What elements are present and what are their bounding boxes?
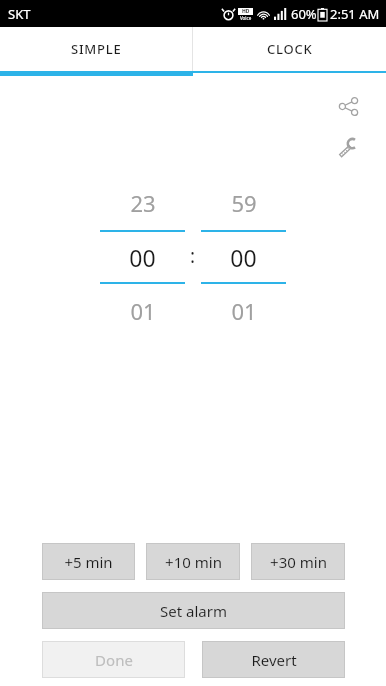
staticText: Revert [251, 650, 297, 670]
staticText: : [190, 243, 196, 269]
staticText: +5 min [64, 552, 113, 572]
button[interactable]: Share [328, 86, 368, 126]
staticText: 23 [130, 188, 156, 218]
staticText: 00 [129, 242, 156, 273]
staticText: Done [95, 650, 133, 670]
staticText: HD [242, 8, 250, 15]
staticText: 01 [130, 296, 156, 326]
button[interactable]: SIMPLE [0, 27, 192, 71]
button[interactable]: 59 [201, 176, 286, 338]
staticText: +10 min [165, 552, 222, 572]
staticText: 2:51 AM [330, 5, 380, 23]
button[interactable]: Done [42, 641, 185, 678]
staticText: +30 min [270, 552, 327, 572]
staticText: CLOCK [267, 40, 313, 58]
button[interactable]: CLOCK [193, 27, 386, 71]
button[interactable]: +5 min [42, 543, 135, 580]
button[interactable]: Revert [202, 641, 345, 678]
button[interactable]: +10 min [146, 543, 240, 580]
button[interactable]: Settings [328, 128, 368, 168]
staticText: Voice [240, 15, 252, 21]
button[interactable]: +30 min [251, 543, 345, 580]
button[interactable]: 23 [100, 176, 185, 338]
staticText: 00 [230, 242, 257, 273]
staticText: SKT [8, 5, 31, 23]
staticText: Set alarm [160, 601, 227, 621]
button[interactable]: Set alarm [42, 592, 345, 629]
staticText: SIMPLE [71, 40, 122, 58]
staticText: 59 [231, 188, 257, 218]
staticText: 01 [231, 296, 257, 326]
staticText: 60% [291, 5, 317, 23]
